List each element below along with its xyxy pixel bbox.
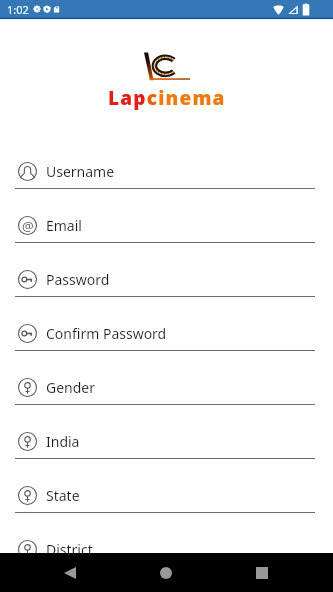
staticText: Gender [46, 378, 96, 397]
staticText: Lapcinema [108, 85, 226, 111]
staticText: 1:02 [7, 2, 29, 17]
staticText: Username [46, 162, 115, 181]
staticText: Email [46, 216, 82, 235]
staticText: Confirm Password [46, 324, 167, 343]
button[interactable]: Home [146, 553, 186, 592]
button[interactable]: Username [0, 154, 333, 208]
button[interactable]: @ [0, 208, 333, 262]
button[interactable]: India [0, 424, 333, 478]
button[interactable]: State [0, 478, 333, 532]
staticText: @ [22, 217, 34, 235]
button[interactable]: Password [0, 262, 333, 316]
button[interactable]: Gender [0, 370, 333, 424]
staticText: District [46, 540, 93, 559]
staticText: India [46, 432, 80, 451]
button[interactable]: District [0, 532, 333, 586]
button[interactable]: Back [50, 553, 90, 592]
button[interactable]: Recent apps [242, 553, 282, 592]
button[interactable]: Confirm Password [0, 316, 333, 370]
staticText: State [46, 486, 80, 505]
staticText: Password [46, 270, 110, 289]
